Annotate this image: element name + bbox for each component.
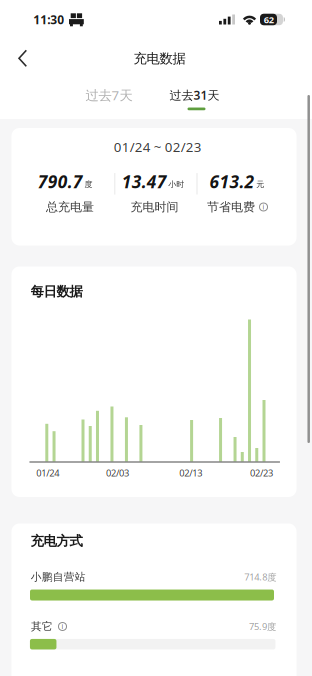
staticText: 01/24 ~ 02/23 — [114, 138, 202, 156]
staticText: 小时 — [168, 179, 184, 189]
staticText: 790.7 — [38, 170, 83, 193]
staticText: 75.9度 — [249, 620, 276, 633]
staticText: 总充电量 — [46, 200, 94, 214]
staticText: 13.47 — [122, 170, 167, 193]
staticText: 01/24 — [36, 467, 59, 479]
staticText: 充电时间 — [130, 200, 178, 214]
staticText: 过去31天 — [169, 87, 219, 103]
staticText: 小鹏自营站 — [31, 570, 86, 583]
staticText: 过去7天 — [85, 86, 132, 104]
button[interactable]: Info — [57, 621, 68, 632]
staticText: 02/23 — [250, 467, 273, 479]
staticText: i — [61, 622, 63, 631]
staticText: 每日数据 — [30, 283, 82, 300]
staticText: 62 — [264, 13, 274, 26]
staticText: 714.8度 — [244, 571, 276, 583]
staticText: 充电数据 — [133, 50, 185, 67]
staticText: 613.2 — [209, 170, 254, 193]
button[interactable]: Back — [3, 38, 43, 78]
staticText: 节省电费 — [207, 200, 255, 214]
staticText: 02/03 — [106, 467, 129, 479]
button[interactable]: 过去7天 — [71, 82, 147, 108]
staticText: 11:30 — [33, 11, 64, 27]
staticText: 充电方式 — [30, 533, 82, 549]
button[interactable]: Info — [258, 201, 269, 212]
staticText: i — [262, 203, 264, 211]
staticText: 其它 — [31, 620, 53, 633]
staticText: 元 — [256, 179, 264, 189]
button[interactable]: 过去31天 — [154, 85, 234, 119]
staticText: 度 — [84, 179, 92, 189]
staticText: 02/13 — [179, 467, 202, 479]
